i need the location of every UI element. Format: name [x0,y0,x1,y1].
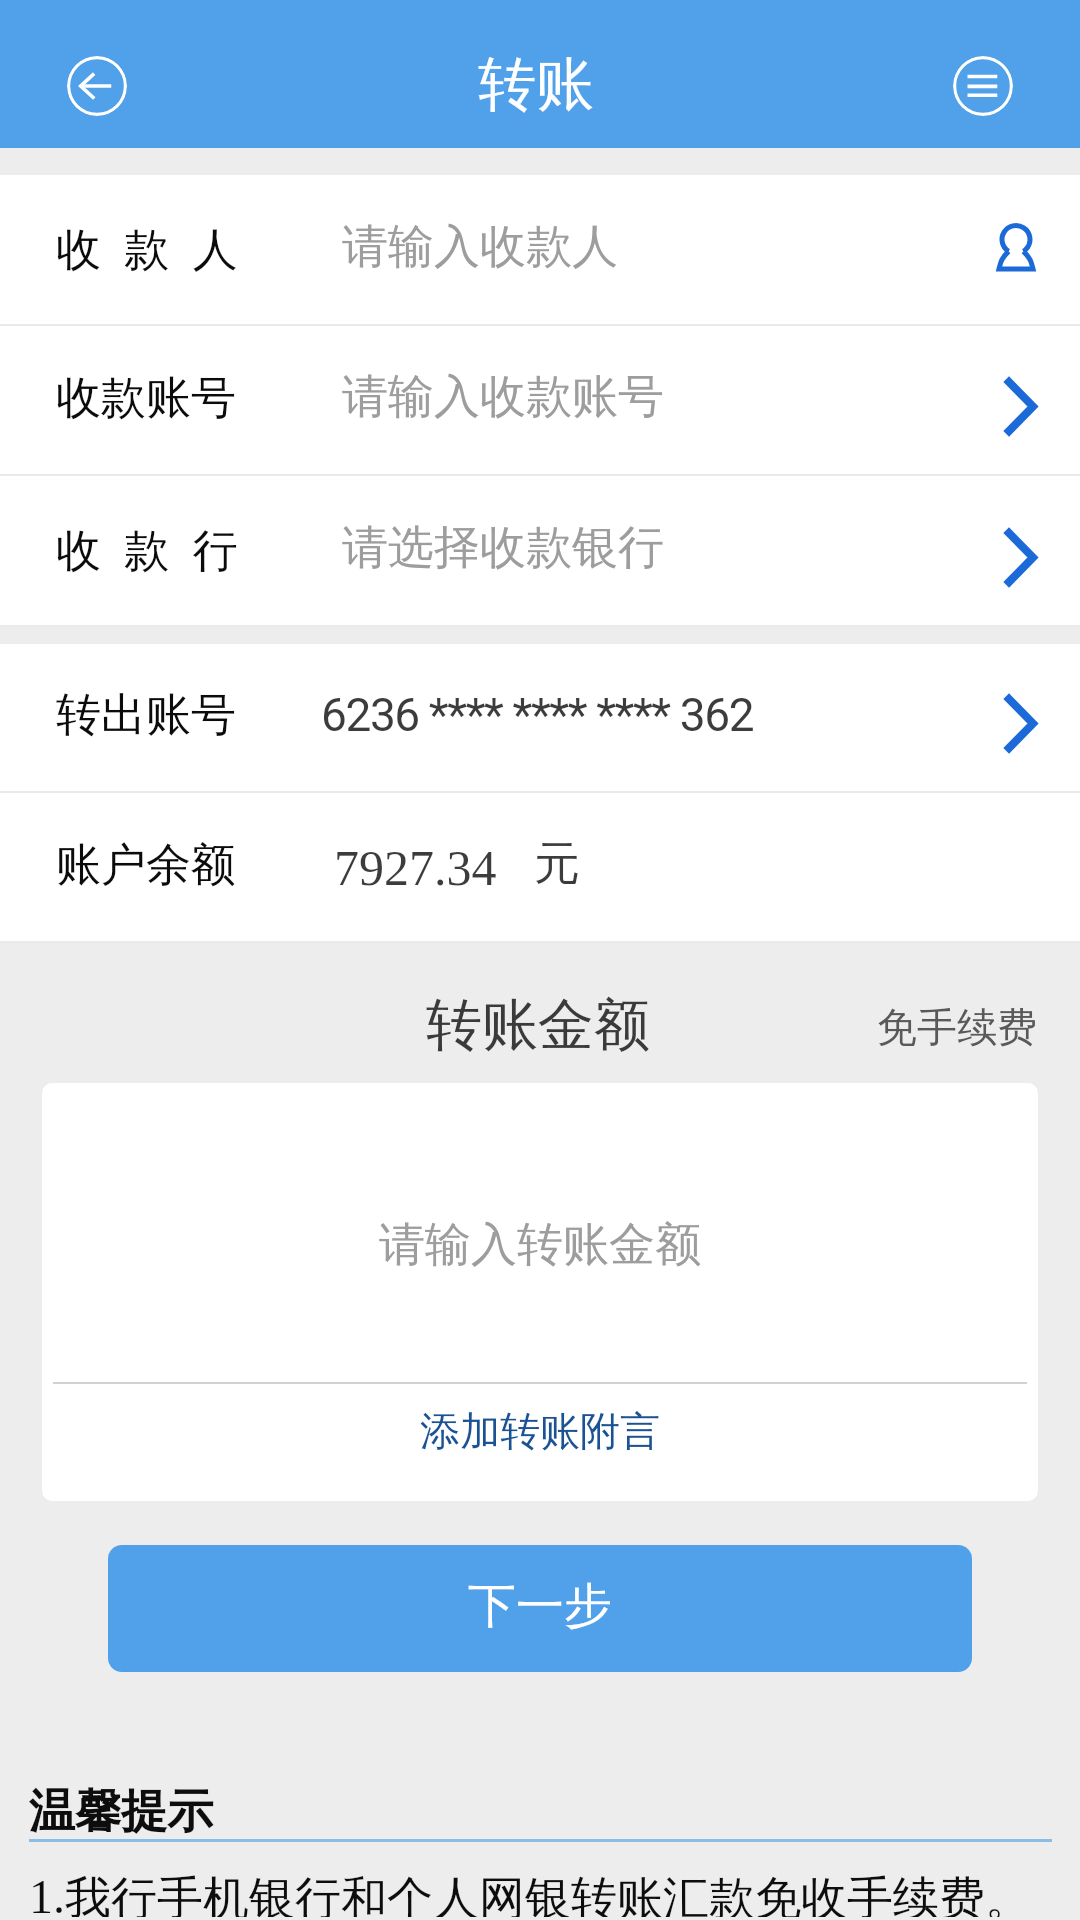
staticText: 账户余额 [56,837,236,894]
other: Pick bank [1005,477,1080,627]
staticText: 7927.34 [334,840,497,895]
button[interactable]: 账户余额 [0,793,1080,943]
staticText: 添加转账附言 [420,1406,660,1456]
staticText: 1. [29,1870,65,1917]
other: Pick payee account [1005,326,1080,476]
staticText: 请输入转账金额 [379,1216,701,1274]
staticText: 6236 **** **** **** 362 [321,688,754,742]
button[interactable]: Menu [953,56,1013,116]
staticText: 下一步 [468,1576,612,1636]
other: Choose payee [1005,176,1080,326]
button[interactable]: Back [67,56,127,116]
button[interactable]: 下一步 [108,1545,972,1672]
staticText: 请选择收款银行 [342,519,664,577]
button[interactable]: 收 款 人 [0,175,1080,326]
button[interactable]: 转出账号 [0,644,1080,793]
button[interactable]: 添加转账附言 [42,1384,1038,1501]
staticText: 免手续费 [877,1002,1037,1052]
staticText: 请输入收款人 [342,218,618,276]
staticText: 转账 [478,48,594,121]
staticText: 我行手机银行和个人网银转账汇款免收手续费。 [65,1870,1031,1917]
staticText: 温馨提示 [29,1783,213,1841]
staticText: 元 [534,835,580,893]
staticText: 收 款 行 [56,518,238,579]
staticText: 请输入收款账号 [342,368,664,426]
staticText: 转出账号 [56,687,236,744]
other: Pick source account [1005,644,1080,793]
button[interactable]: 收款账号 [0,326,1080,476]
staticText: 收款账号 [56,370,236,427]
button[interactable]: 收 款 行 [0,476,1080,627]
staticText: 转账金额 [426,990,650,1061]
staticText: 收 款 人 [56,217,238,278]
